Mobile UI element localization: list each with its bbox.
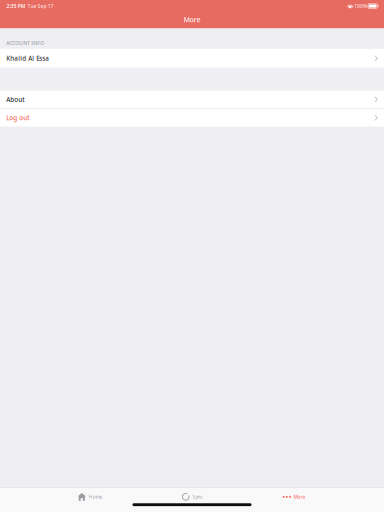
button[interactable]: More [271, 493, 317, 501]
button[interactable]: Sync [169, 493, 215, 501]
staticText: More [293, 494, 305, 500]
button[interactable]: Home [67, 493, 113, 501]
button[interactable]: About [0, 90, 384, 108]
staticText: Khalid Al Essa [6, 54, 49, 62]
staticText: More [183, 15, 200, 24]
staticText: Tue Sep 17 [25, 2, 53, 10]
staticText: Home [88, 494, 102, 500]
staticText: Sync [192, 494, 202, 500]
button[interactable]: Khalid Al Essa [0, 49, 384, 68]
staticText: 2:35 PM [6, 2, 25, 10]
staticText: ACCOUNT INFO [6, 40, 44, 46]
staticText: About [6, 95, 24, 104]
staticText: Log out [6, 113, 29, 122]
staticText: 100% [353, 2, 368, 10]
button[interactable]: Log out [0, 109, 384, 127]
